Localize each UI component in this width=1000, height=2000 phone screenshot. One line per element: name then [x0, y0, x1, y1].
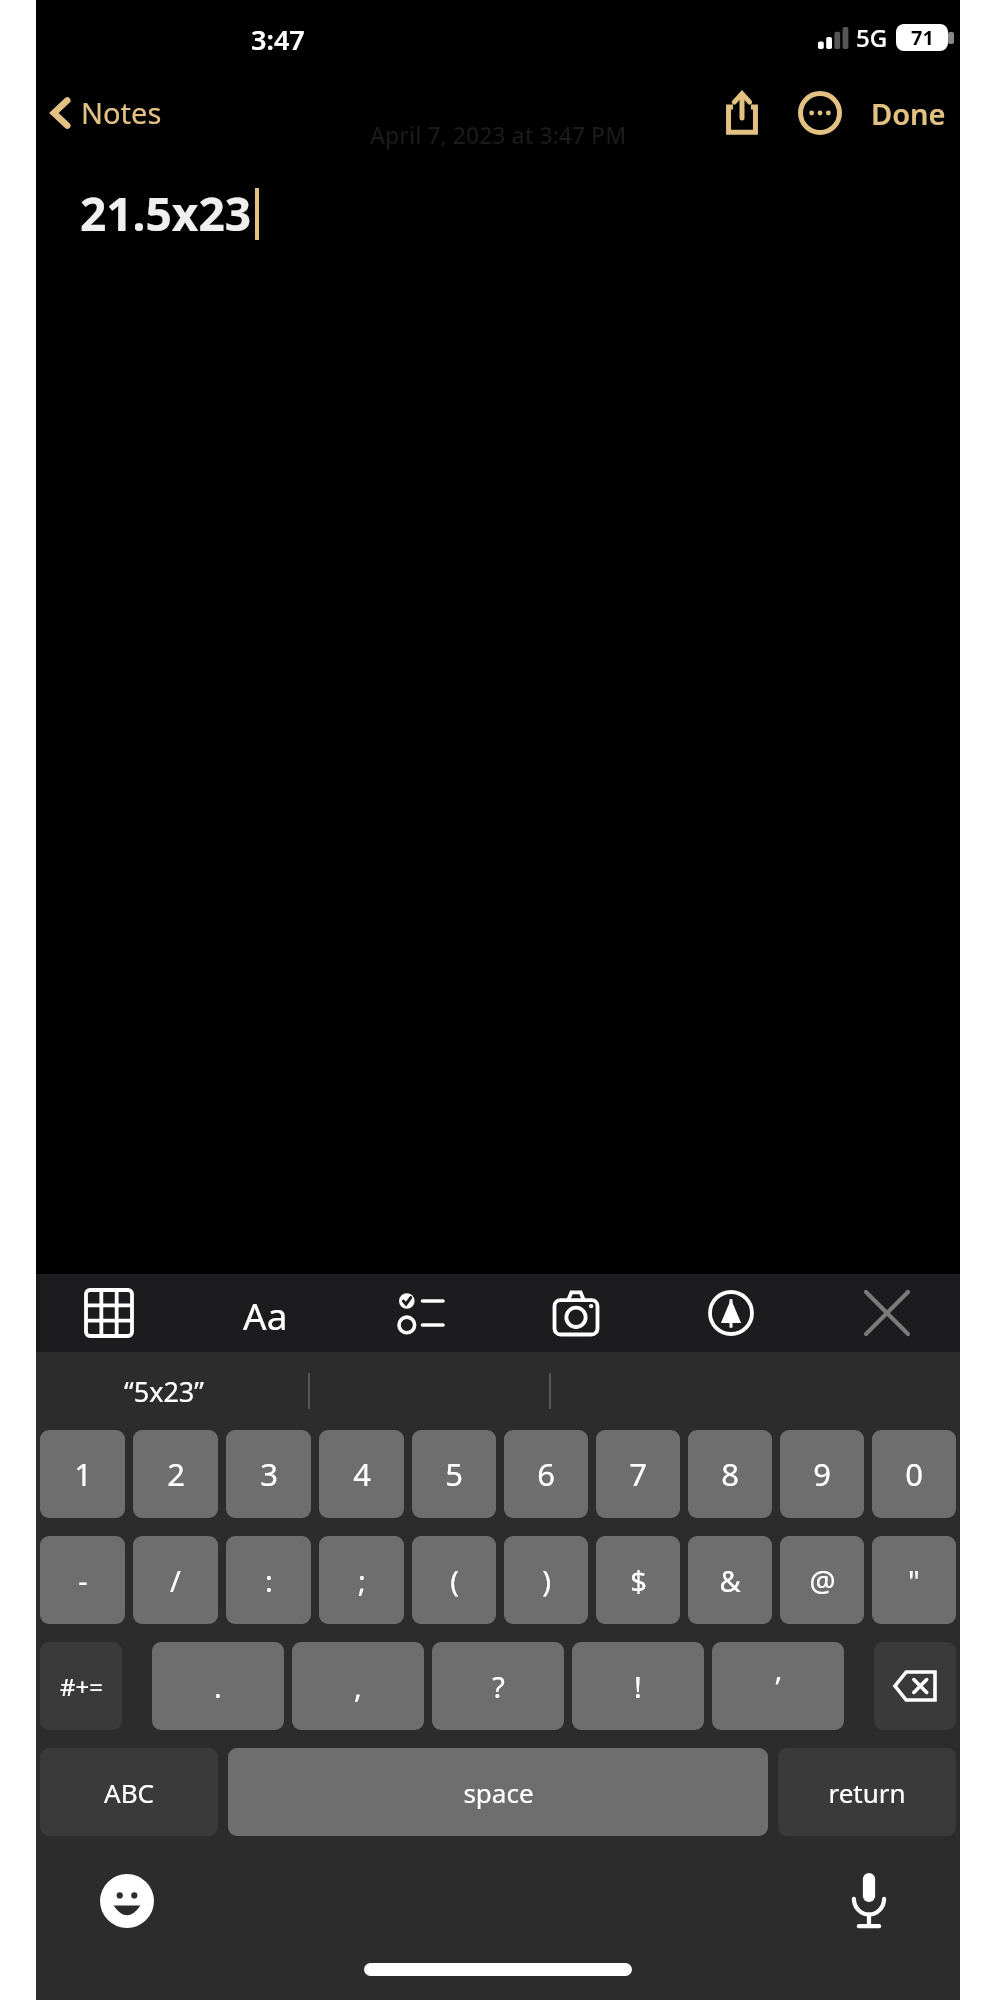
button[interactable]: Done	[857, 84, 960, 143]
staticText: Aa	[243, 1290, 288, 1336]
button[interactable]: Notes	[36, 87, 172, 138]
button[interactable]: Delete	[874, 1642, 956, 1730]
button[interactable]: Camera	[531, 1274, 621, 1352]
button[interactable]: (	[412, 1536, 496, 1624]
staticText: .	[214, 1667, 222, 1706]
button[interactable]: Dictation	[834, 1866, 904, 1936]
staticText: 0	[905, 1453, 923, 1495]
staticText: 9	[813, 1453, 831, 1495]
staticText: 3	[260, 1453, 278, 1495]
staticText: 71	[911, 24, 934, 51]
staticText: ’	[775, 1667, 781, 1706]
staticText: return	[828, 1775, 906, 1810]
staticText: ?	[492, 1667, 505, 1706]
button[interactable]: ABC	[40, 1748, 218, 1836]
button[interactable]: space	[228, 1748, 768, 1836]
button[interactable]: .	[152, 1642, 284, 1730]
button[interactable]: ?	[432, 1642, 564, 1730]
staticText: Done	[871, 94, 946, 133]
button[interactable]: 1	[40, 1430, 125, 1518]
staticText: 21.5x23	[80, 182, 252, 245]
staticText: 7	[629, 1453, 647, 1495]
button[interactable]: 6	[504, 1430, 588, 1518]
button[interactable]: Table	[64, 1274, 154, 1352]
button[interactable]: Markup	[686, 1274, 776, 1352]
staticText: )	[542, 1561, 551, 1600]
staticText: "	[908, 1561, 920, 1600]
staticText: 4	[353, 1453, 371, 1495]
button[interactable]: !	[572, 1642, 704, 1730]
button[interactable]: :	[226, 1536, 311, 1624]
staticText: April 7, 2023 at 3:47 PM	[370, 119, 627, 150]
button[interactable]: 2	[133, 1430, 218, 1518]
button[interactable]: More options	[789, 82, 851, 144]
button[interactable]: 8	[688, 1430, 772, 1518]
button[interactable]: $	[596, 1536, 680, 1624]
button[interactable]: 9	[780, 1430, 864, 1518]
staticText: -	[78, 1561, 88, 1600]
staticText: space	[463, 1775, 534, 1810]
button[interactable]: Emoji	[92, 1866, 162, 1936]
staticText: 5G	[856, 21, 888, 54]
staticText: (	[450, 1561, 459, 1600]
button[interactable]: &	[688, 1536, 772, 1624]
button[interactable]: Close keyboard	[842, 1274, 932, 1352]
button[interactable]: 3	[226, 1430, 311, 1518]
staticText: 2	[167, 1453, 185, 1495]
staticText: #+=	[60, 1670, 103, 1703]
staticText: ABC	[104, 1775, 154, 1810]
button[interactable]: “5x23”	[124, 1373, 205, 1410]
staticText: 1	[74, 1453, 92, 1495]
button[interactable]: 7	[596, 1430, 680, 1518]
staticText: 3:47	[251, 21, 305, 58]
staticText: ,	[354, 1667, 362, 1706]
button[interactable]: return	[778, 1748, 956, 1836]
staticText: @	[809, 1561, 836, 1600]
button[interactable]: 4	[319, 1430, 404, 1518]
staticText: /	[170, 1561, 181, 1600]
staticText: &	[719, 1561, 741, 1600]
staticText: 6	[537, 1453, 555, 1495]
staticText: ;	[358, 1561, 366, 1600]
staticText: 5	[445, 1453, 463, 1495]
button[interactable]: ;	[319, 1536, 404, 1624]
button[interactable]: Text format	[220, 1274, 310, 1352]
button[interactable]: 5	[412, 1430, 496, 1518]
button[interactable]: Checklist	[375, 1274, 465, 1352]
button[interactable]: "	[872, 1536, 956, 1624]
staticText: $	[630, 1561, 647, 1600]
button[interactable]: #+=	[40, 1642, 122, 1730]
button[interactable]: /	[133, 1536, 218, 1624]
button[interactable]: @	[780, 1536, 864, 1624]
button[interactable]: Share	[711, 82, 773, 144]
button[interactable]: )	[504, 1536, 588, 1624]
button[interactable]: -	[40, 1536, 125, 1624]
staticText: !	[634, 1667, 642, 1706]
staticText: Notes	[81, 93, 162, 132]
button[interactable]: 0	[872, 1430, 956, 1518]
staticText: :	[265, 1561, 273, 1600]
staticText: 8	[721, 1453, 739, 1495]
button[interactable]: ’	[712, 1642, 844, 1730]
button[interactable]: ,	[292, 1642, 424, 1730]
